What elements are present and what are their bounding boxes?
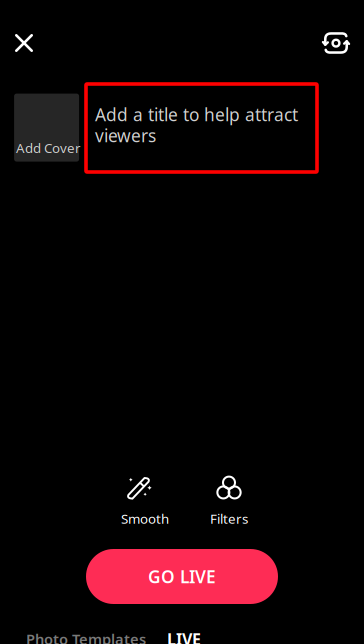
button[interactable]: GO LIVE — [86, 549, 278, 604]
button[interactable]: Photo Templates — [21, 629, 151, 644]
button[interactable]: Flip camera — [314, 21, 358, 65]
staticText: LIVE — [167, 628, 201, 644]
button[interactable]: Add Cover — [15, 94, 79, 162]
staticText: Filters — [210, 510, 248, 527]
button[interactable]: Add a title to help attract viewers — [86, 84, 317, 172]
staticText: viewers — [95, 124, 156, 147]
button[interactable]: LIVE — [156, 629, 212, 644]
staticText: Add Cover — [16, 139, 81, 157]
button[interactable]: Filters — [184, 477, 274, 525]
staticText: Smooth — [121, 510, 169, 527]
button[interactable]: Smooth — [94, 477, 184, 525]
button[interactable]: Close — [2, 21, 46, 65]
staticText: GO LIVE — [148, 565, 216, 588]
staticText: Add a title to help attract — [95, 103, 298, 126]
staticText: Photo Templates — [26, 629, 146, 644]
